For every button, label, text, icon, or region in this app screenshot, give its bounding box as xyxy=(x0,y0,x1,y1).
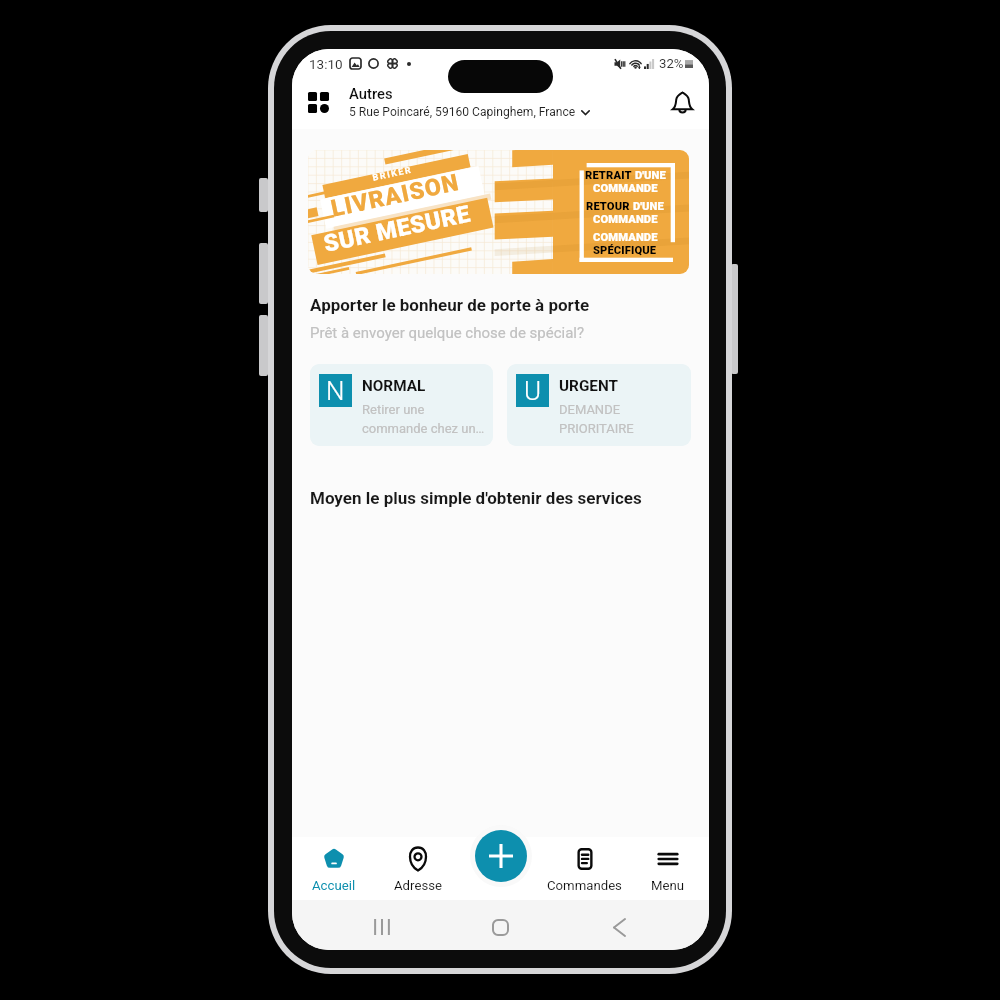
button[interactable]: Categories xyxy=(302,86,334,118)
staticText: 32% xyxy=(659,56,684,71)
staticText: NORMAL xyxy=(362,377,426,395)
staticText: U xyxy=(524,376,542,406)
button[interactable]: Menu xyxy=(626,837,709,900)
staticText: Commandes xyxy=(547,878,622,893)
staticText: DEMANDE PRIORITAIRE xyxy=(559,402,634,437)
staticText: RETRAIT xyxy=(585,169,632,182)
staticText: D'UNE xyxy=(630,200,664,213)
button[interactable]: Adresse xyxy=(376,837,460,900)
staticText: Apporter le bonheur de porte à porte xyxy=(310,295,590,315)
button[interactable]: U xyxy=(507,364,691,446)
staticText: 13:10 xyxy=(309,56,343,72)
staticText: N xyxy=(326,376,345,406)
staticText: COMMANDE xyxy=(593,213,658,226)
staticText: SPÉCIFIQUE xyxy=(593,244,657,257)
button[interactable]: Commandes xyxy=(543,837,626,900)
staticText: Prêt à envoyer quelque chose de spécial? xyxy=(310,324,585,342)
button[interactable]: Notifications xyxy=(663,83,701,121)
staticText: Menu xyxy=(651,878,685,893)
button[interactable]: N xyxy=(310,364,493,446)
staticText: D'UNE xyxy=(632,169,666,182)
staticText: 5 Rue Poincaré, 59160 Capinghem, France xyxy=(349,105,576,119)
staticText: COMMANDE xyxy=(593,231,658,244)
staticText: Accueil xyxy=(312,878,356,893)
button[interactable]: Accueil xyxy=(292,837,376,900)
staticText: Moyen le plus simple d'obtenir des servi… xyxy=(310,488,642,508)
staticText: RETOUR xyxy=(586,200,630,213)
staticText: URGENT xyxy=(559,377,618,395)
staticText: COMMANDE xyxy=(593,182,658,195)
button[interactable]: Add xyxy=(475,830,527,882)
staticText: Adresse xyxy=(394,878,442,893)
staticText: Autres xyxy=(349,85,393,102)
staticText: Retirer une commande chez un… xyxy=(362,402,485,437)
